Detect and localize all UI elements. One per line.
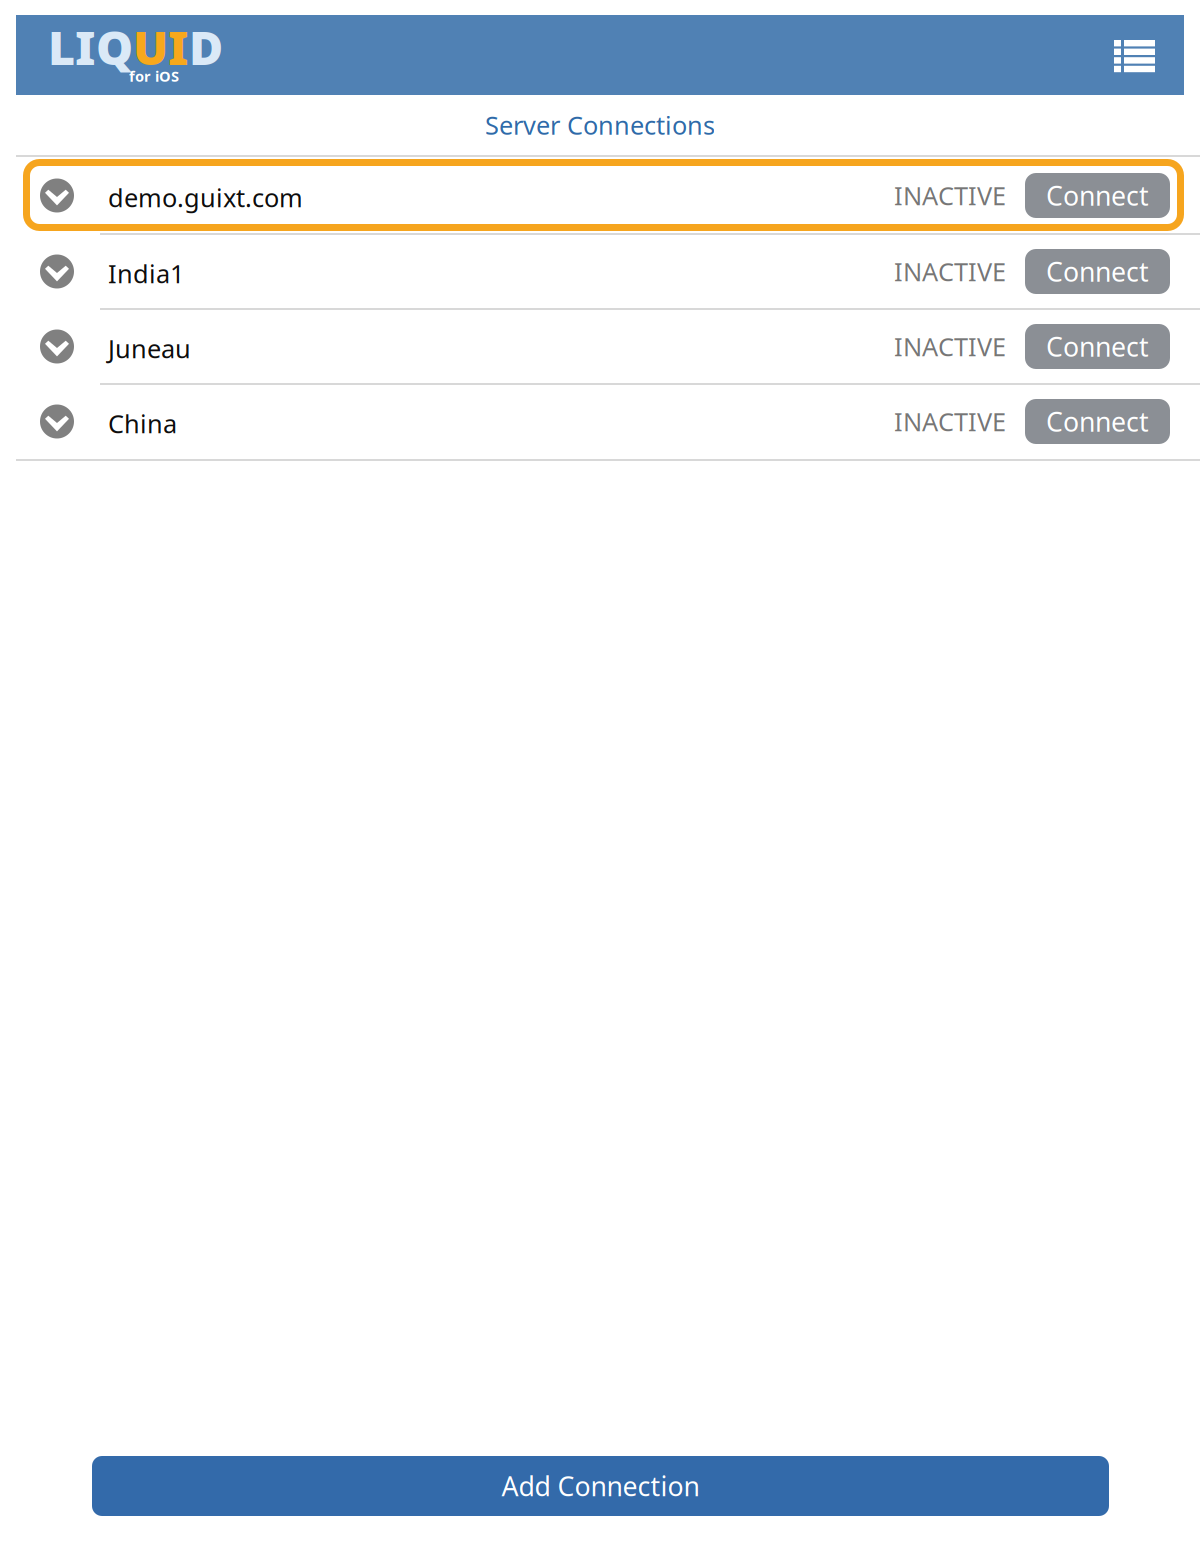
staticText: D (189, 16, 223, 78)
button[interactable]: Show details for India1 (0, 234, 80, 309)
button[interactable]: Connect (1025, 399, 1170, 444)
staticText: Add Connection (501, 1468, 699, 1504)
staticText: Connect (1046, 178, 1149, 213)
staticText: for iOS (129, 66, 179, 86)
staticText: demo.guixt.com (108, 181, 303, 214)
staticText: Juneau (108, 332, 191, 365)
button[interactable]: Add Connection (92, 1456, 1109, 1516)
staticText: India1 (108, 257, 184, 290)
staticText: INACTIVE (894, 179, 1006, 212)
staticText: Connect (1046, 254, 1149, 289)
button[interactable]: Connect (1025, 249, 1170, 294)
staticText: INACTIVE (894, 255, 1006, 288)
button[interactable]: Connect (1025, 324, 1170, 369)
button[interactable]: Show details for Juneau (0, 309, 80, 384)
button[interactable]: Menu (1114, 35, 1184, 75)
staticText: UI (133, 16, 189, 78)
staticText: INACTIVE (894, 330, 1006, 363)
staticText: LIQ (48, 16, 133, 78)
staticText: Connect (1046, 404, 1149, 439)
staticText: INACTIVE (894, 405, 1006, 438)
button[interactable]: Show details for demo.guixt.com (0, 158, 80, 233)
button[interactable]: Connect (1025, 173, 1170, 218)
staticText: Server Connections (485, 108, 715, 142)
staticText: Connect (1046, 329, 1149, 364)
staticText: China (108, 407, 177, 440)
button[interactable]: Show details for China (0, 384, 80, 459)
